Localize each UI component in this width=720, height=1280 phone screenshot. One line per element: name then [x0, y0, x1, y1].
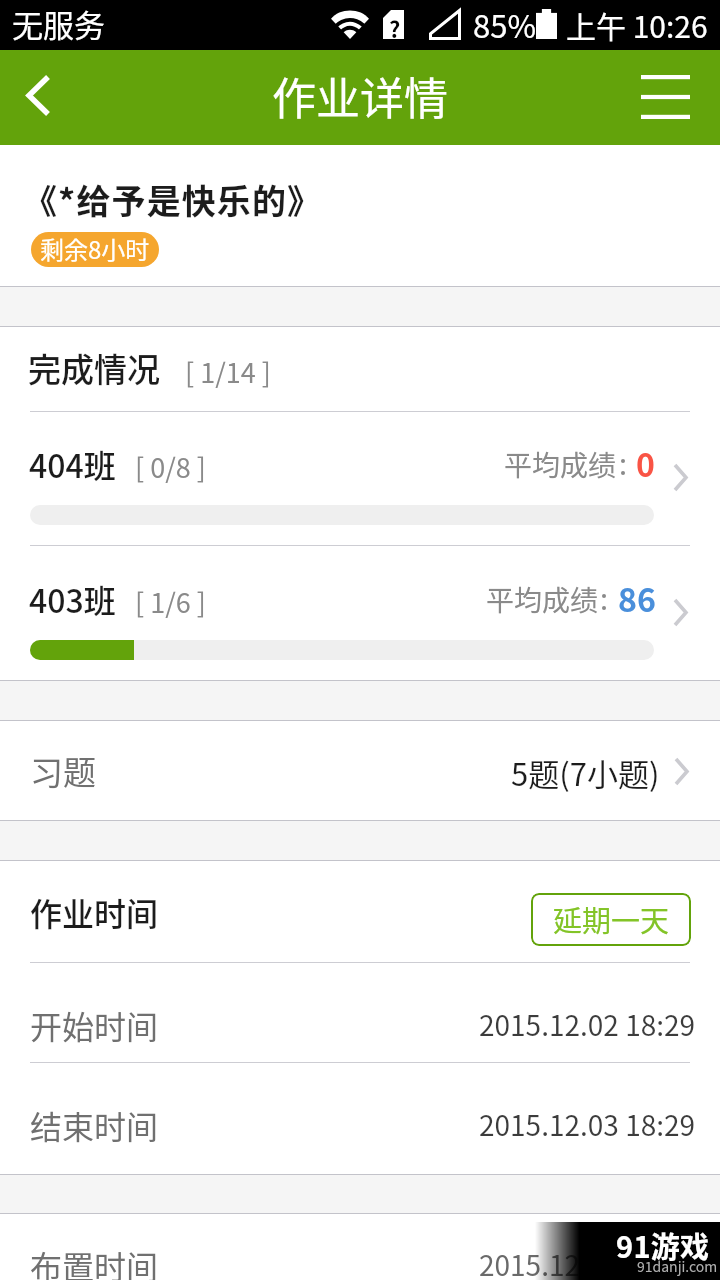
staticText: 剩余8小时	[40, 232, 150, 266]
button[interactable]	[0, 412, 720, 545]
staticText: 2015.12.02 18:29	[479, 1004, 696, 1045]
staticText: 作业时间	[30, 889, 159, 935]
staticText: [ 0/8 ]	[135, 447, 206, 486]
staticText: 习题	[30, 747, 96, 795]
staticText: 《*给予是快乐的》	[23, 175, 323, 224]
staticText: [ 1/14 ]	[185, 352, 271, 391]
staticText: 91游戏	[616, 1224, 710, 1266]
staticText: 91danji.com	[637, 1256, 718, 1276]
staticText: 无服务	[12, 1, 105, 46]
staticText: 平均成绩	[504, 444, 617, 485]
button[interactable]	[0, 721, 720, 820]
staticText: 完成情况	[28, 344, 160, 392]
staticText: 布置时间	[30, 1242, 159, 1280]
staticText: 上午 10:26	[566, 3, 708, 46]
staticText: 作业详情	[272, 64, 448, 128]
staticText: 结束时间	[30, 1102, 159, 1148]
staticText: 5题(7小题)	[511, 750, 660, 795]
staticText: 延期一天	[553, 898, 670, 940]
staticText: 2015.12.03 18:29	[479, 1104, 696, 1145]
staticText: 403班	[29, 576, 116, 622]
button[interactable]: Back	[0, 50, 84, 145]
staticText: 开始时间	[30, 1002, 159, 1048]
staticText: 0	[636, 440, 655, 486]
staticText: 86	[618, 575, 656, 621]
staticText: 85%	[473, 2, 536, 47]
button[interactable]: Menu	[620, 50, 720, 145]
staticText: 404班	[29, 441, 116, 487]
staticText: [ 1/6 ]	[135, 582, 206, 621]
staticText: 2015.12	[479, 1244, 581, 1280]
button[interactable]	[0, 546, 720, 680]
staticText: 平均成绩	[486, 579, 599, 620]
staticText: ?	[389, 12, 401, 41]
button[interactable]: 延期一天	[531, 893, 691, 946]
